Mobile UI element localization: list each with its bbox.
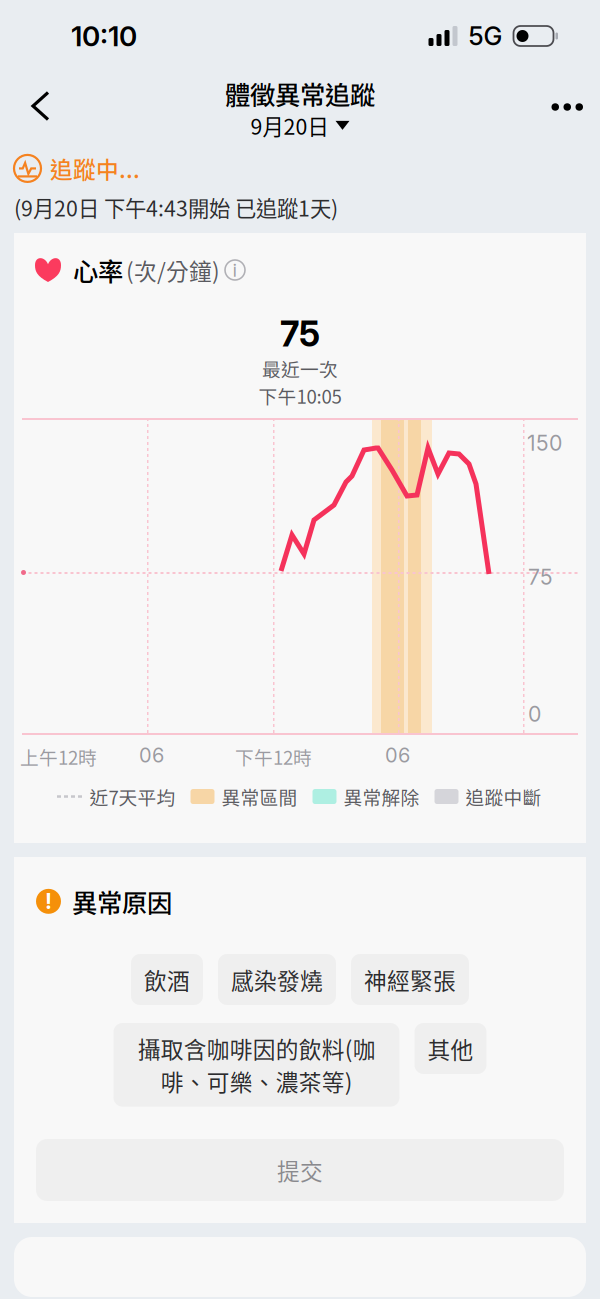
- staticText: 神經緊張: [364, 963, 456, 996]
- button[interactable]: More options: [537, 89, 597, 125]
- staticText: 10:10: [71, 19, 137, 53]
- staticText: 其他: [427, 1032, 473, 1065]
- staticText: 最近一次: [262, 355, 338, 382]
- staticText: 150: [527, 430, 562, 456]
- staticText: !: [45, 888, 52, 914]
- staticText: 06: [385, 743, 410, 767]
- button[interactable]: 其他: [414, 1023, 486, 1074]
- staticText: 提交: [277, 1154, 323, 1186]
- staticText: 下午12時: [235, 743, 312, 770]
- button[interactable]: 神經緊張: [351, 954, 469, 1005]
- staticText: 感染發燒: [231, 963, 323, 996]
- button[interactable]: 感染發燒: [218, 954, 336, 1005]
- staticText: 近7天平均: [89, 783, 175, 810]
- staticText: 75: [280, 313, 320, 355]
- staticText: 心率: [73, 252, 123, 288]
- button[interactable]: Back: [19, 78, 62, 133]
- staticText: i: [232, 259, 237, 281]
- staticText: 75: [528, 564, 553, 590]
- staticText: 9月20日: [250, 110, 328, 141]
- staticText: (9月20日 下午4:43開始 已追蹤1天): [14, 192, 338, 223]
- button[interactable]: 9月20日: [250, 110, 349, 141]
- staticText: 06: [139, 743, 164, 767]
- staticText: 下午10:05: [258, 382, 341, 409]
- staticText: 體徵異常追蹤: [225, 75, 375, 112]
- button[interactable]: 飲酒: [131, 954, 203, 1005]
- staticText: 異常解除: [343, 783, 419, 810]
- button[interactable]: 攝取含咖啡因的飲料(咖 啡、可樂、濃茶等): [113, 1023, 399, 1107]
- staticText: 追蹤中斷: [465, 783, 541, 810]
- staticText: 上午12時: [20, 743, 97, 770]
- staticText: 攝取含咖啡因的飲料(咖 啡、可樂、濃茶等): [137, 1032, 375, 1098]
- staticText: 5G: [468, 21, 502, 51]
- button[interactable]: 提交: [36, 1139, 564, 1201]
- staticText: (次/分鐘): [126, 254, 220, 286]
- staticText: 飲酒: [144, 963, 190, 996]
- staticText: 異常區間: [221, 783, 297, 810]
- button[interactable]: 心率: [35, 252, 586, 288]
- staticText: 異常原因: [72, 883, 172, 920]
- staticText: 追蹤中...: [50, 152, 140, 185]
- staticText: 0: [528, 701, 541, 727]
